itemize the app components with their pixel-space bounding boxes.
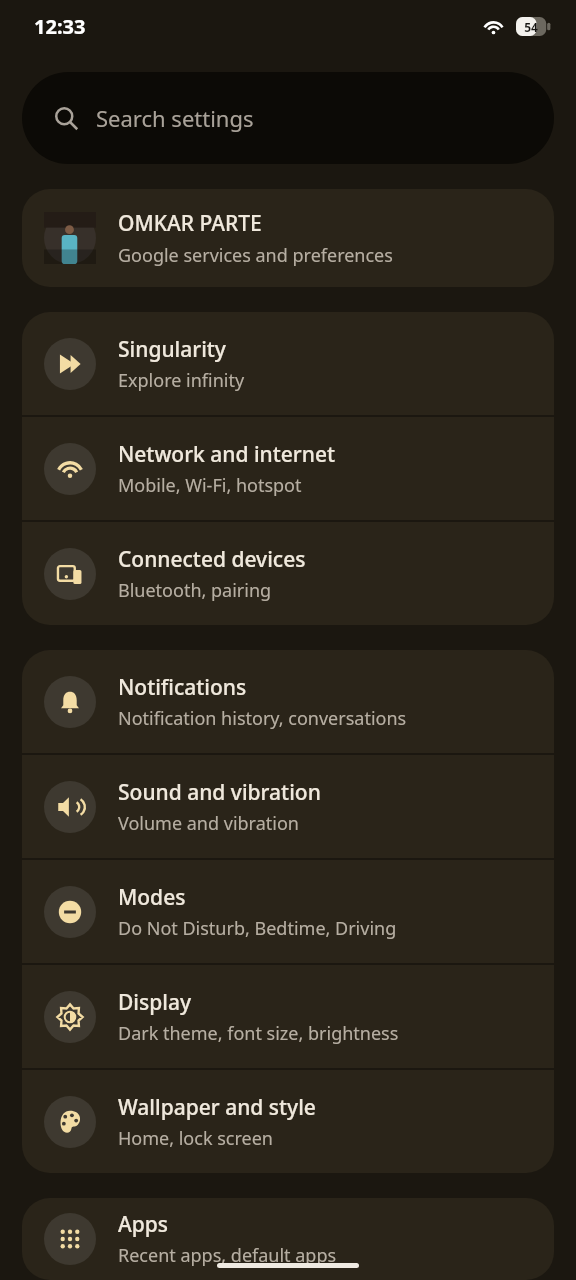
staticText: Search settings [96, 103, 254, 133]
staticText: Bluetooth, pairing [118, 578, 272, 603]
staticText: Notification history, conversations [118, 706, 407, 731]
button[interactable]: Wallpaper and style [22, 1070, 554, 1173]
staticText: Dark theme, font size, brightness [118, 1021, 399, 1046]
button[interactable]: Display [22, 965, 554, 1068]
button[interactable]: OMKAR PARTE [22, 189, 554, 287]
staticText: Sound and vibration [118, 778, 321, 807]
staticText: Display [118, 988, 192, 1017]
staticText: Home, lock screen [118, 1126, 273, 1151]
staticText: Volume and vibration [118, 811, 299, 836]
button[interactable]: Network and internet [22, 417, 554, 520]
staticText: Explore infinity [118, 368, 245, 393]
staticText: Connected devices [118, 545, 306, 574]
staticText: Network and internet [118, 440, 335, 469]
staticText: Apps [118, 1210, 169, 1239]
other: Battery 54 percent [516, 17, 552, 36]
staticText: Wallpaper and style [118, 1093, 316, 1122]
button[interactable]: Modes [22, 860, 554, 963]
staticText: Notifications [118, 673, 247, 702]
button[interactable]: Notifications [22, 650, 554, 753]
button[interactable]: Search settings [22, 72, 554, 164]
staticText: Google services and preferences [118, 243, 393, 268]
button[interactable]: Sound and vibration [22, 755, 554, 858]
button[interactable]: Apps [22, 1198, 554, 1280]
staticText: Recent apps, default apps [118, 1243, 337, 1268]
staticText: 12:33 [34, 13, 86, 40]
staticText: OMKAR PARTE [118, 209, 262, 238]
button[interactable]: Singularity [22, 312, 554, 415]
staticText: 54 [524, 19, 538, 35]
staticText: Modes [118, 883, 186, 912]
other: Wi-Fi [482, 15, 505, 38]
staticText: Mobile, Wi-Fi, hotspot [118, 473, 302, 498]
button[interactable]: Connected devices [22, 522, 554, 625]
staticText: Singularity [118, 335, 226, 364]
staticText: Do Not Disturb, Bedtime, Driving [118, 916, 397, 941]
